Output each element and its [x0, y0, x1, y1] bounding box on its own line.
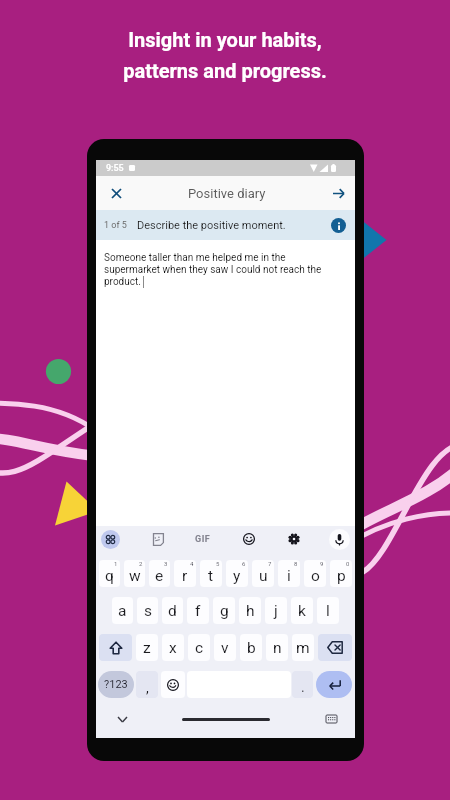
button[interactable]: ?123: [98, 671, 134, 698]
button[interactable]: Info: [331, 218, 346, 233]
button[interactable]: a: [112, 597, 133, 624]
button[interactable]: Stickers: [147, 529, 167, 549]
button[interactable]: 9: [304, 560, 326, 587]
staticText: ,: [146, 680, 149, 696]
staticText: l: [326, 602, 330, 620]
button[interactable]: 3: [149, 560, 170, 587]
staticText: Someone taller than me helped me in the …: [104, 252, 332, 288]
staticText: f: [195, 602, 201, 620]
button[interactable]: Keyboard options: [101, 530, 120, 549]
staticText: 1: [114, 560, 118, 567]
staticText: c: [195, 639, 204, 657]
staticText: 1 of 5: [104, 220, 127, 231]
button[interactable]: b: [240, 634, 262, 661]
staticText: y: [233, 567, 241, 585]
staticText: 9:55: [106, 163, 124, 174]
button[interactable]: j: [265, 597, 287, 624]
staticText: 0: [346, 560, 350, 567]
button[interactable]: 2: [124, 560, 145, 587]
button[interactable]: k: [291, 597, 313, 624]
staticText: g: [220, 602, 229, 620]
button[interactable]: Enter: [316, 671, 352, 698]
button[interactable]: Close: [102, 179, 130, 207]
staticText: t: [208, 567, 214, 585]
button[interactable]: Hide keyboard: [114, 711, 130, 727]
button[interactable]: Emoji: [239, 529, 259, 549]
staticText: 9: [320, 560, 324, 567]
button[interactable]: 1: [99, 560, 120, 587]
button[interactable]: g: [213, 597, 235, 624]
staticText: q: [105, 567, 114, 585]
staticText: b: [247, 639, 256, 657]
staticText: h: [246, 602, 255, 620]
staticText: x: [169, 639, 177, 657]
staticText: 3: [164, 560, 168, 567]
staticText: j: [274, 602, 278, 620]
button[interactable]: Period: [292, 671, 313, 698]
staticText: v: [221, 639, 229, 657]
staticText: patterns and progress.: [123, 59, 327, 82]
staticText: u: [259, 567, 268, 585]
button[interactable]: Backspace: [318, 634, 352, 661]
staticText: n: [273, 639, 282, 657]
staticText: ?123: [104, 678, 128, 691]
staticText: 4: [190, 560, 194, 567]
staticText: d: [168, 602, 177, 620]
button[interactable]: 4: [174, 560, 196, 587]
staticText: 8: [294, 560, 298, 567]
staticText: .: [301, 679, 305, 695]
button[interactable]: n: [266, 634, 288, 661]
button[interactable]: 5: [200, 560, 222, 587]
staticText: e: [155, 567, 164, 585]
staticText: m: [296, 639, 310, 657]
button[interactable]: 0: [330, 560, 352, 587]
staticText: Positive diary: [188, 186, 266, 201]
staticText: r: [182, 567, 188, 585]
button[interactable]: c: [188, 634, 210, 661]
staticText: o: [311, 567, 320, 585]
button[interactable]: GIF: [192, 532, 214, 547]
staticText: w: [129, 567, 141, 585]
button[interactable]: h: [239, 597, 261, 624]
button[interactable]: v: [214, 634, 236, 661]
button[interactable]: z: [136, 634, 158, 661]
button[interactable]: Comma: [136, 671, 158, 698]
button[interactable]: 7: [252, 560, 274, 587]
button[interactable]: l: [317, 597, 339, 624]
button[interactable]: f: [187, 597, 209, 624]
staticText: 7: [268, 560, 272, 567]
button[interactable]: 8: [278, 560, 300, 587]
button[interactable]: Shift: [99, 634, 132, 661]
staticText: Describe the positive moment.: [137, 219, 286, 232]
button[interactable]: m: [292, 634, 314, 661]
staticText: i: [287, 567, 291, 585]
button[interactable]: x: [162, 634, 184, 661]
staticText: GIF: [195, 534, 211, 545]
button[interactable]: Change keyboard: [323, 711, 339, 727]
button[interactable]: Next: [324, 179, 352, 207]
staticText: z: [143, 639, 151, 657]
staticText: k: [298, 602, 306, 620]
staticText: p: [337, 567, 346, 585]
staticText: 5: [216, 560, 220, 567]
button[interactable]: 6: [226, 560, 248, 587]
button[interactable]: s: [137, 597, 158, 624]
staticText: 6: [242, 560, 246, 567]
button[interactable]: Settings: [284, 529, 304, 549]
staticText: a: [118, 602, 127, 620]
staticText: s: [144, 602, 152, 620]
staticText: 2: [139, 560, 143, 567]
button[interactable]: d: [162, 597, 183, 624]
button[interactable]: Emoji: [161, 671, 185, 698]
button[interactable]: Voice input: [329, 529, 350, 550]
staticText: Insight in your habits,: [128, 28, 322, 51]
